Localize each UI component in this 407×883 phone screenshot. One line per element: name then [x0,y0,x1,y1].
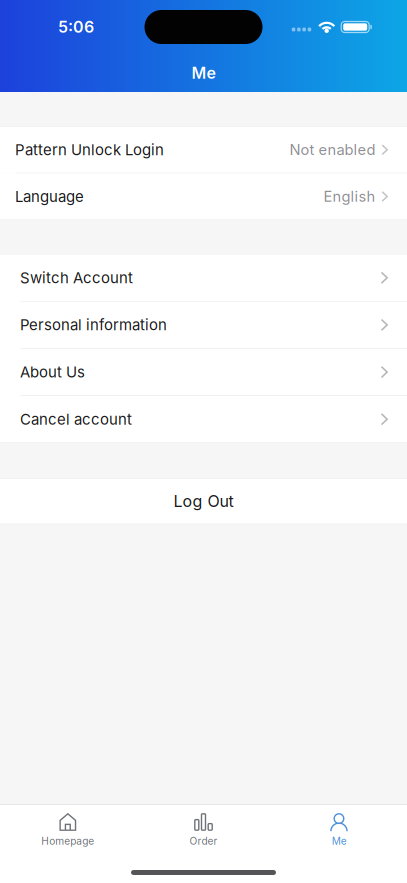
staticText: Me [191,63,215,83]
staticText: Homepage [41,835,94,847]
button[interactable]: Switch Account [0,255,407,301]
button[interactable]: Homepage [0,805,136,853]
staticText: Me [332,835,347,847]
button[interactable]: Cancel account [0,396,407,442]
button[interactable]: Personal information [0,302,407,348]
staticText: Not enabled [289,141,375,159]
button[interactable]: About Us [0,349,407,395]
button[interactable]: Pattern Unlock Login [0,127,407,173]
staticText: Switch Account [20,269,133,287]
staticText: English [323,188,375,205]
staticText: 5:06 [58,17,94,37]
staticText: Log Out [173,492,233,511]
staticText: About Us [20,363,85,381]
staticText: Order [189,835,217,847]
button[interactable]: Order [136,805,271,853]
staticText: Cancel account [20,410,132,428]
button[interactable]: Language [0,173,407,219]
staticText: Language [15,187,84,205]
button[interactable]: Log Out [0,479,407,524]
staticText: Pattern Unlock Login [15,141,164,159]
staticText: Personal information [20,316,167,334]
button[interactable]: Me [271,805,407,853]
